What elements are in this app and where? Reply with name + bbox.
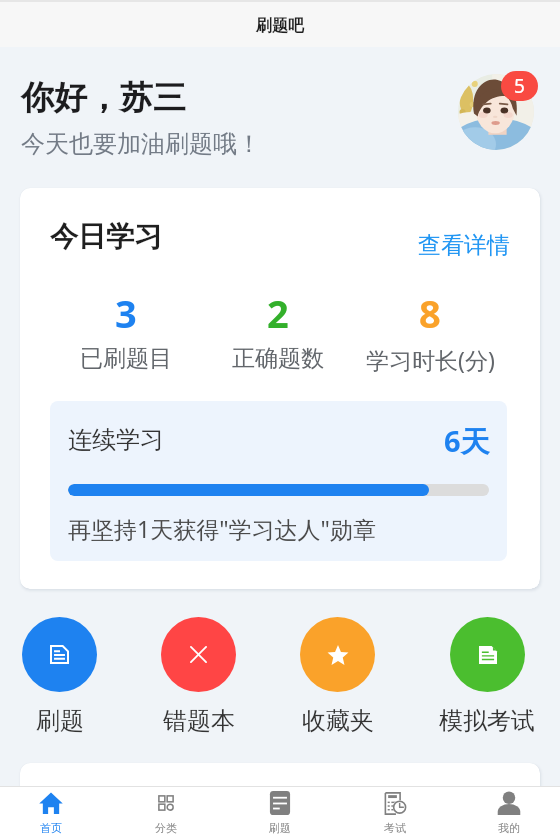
staticText: 2: [267, 287, 289, 339]
button[interactable]: 首页: [27, 787, 75, 836]
button[interactable]: 刷题: [256, 787, 304, 836]
staticText: 8: [419, 287, 441, 339]
staticText: 模拟考试: [439, 706, 535, 736]
staticText: 考试: [384, 821, 406, 835]
button[interactable]: 我的: [485, 787, 533, 836]
staticText: 刷题: [269, 821, 291, 835]
staticText: 学习时长(分): [366, 344, 495, 375]
button[interactable]: 考试: [371, 787, 419, 836]
button[interactable]: 模拟考试: [439, 617, 535, 736]
staticText: 正确题数: [232, 344, 324, 373]
staticText: 再坚持1天获得"学习达人"勋章: [68, 513, 376, 544]
button[interactable]: 刷题: [22, 617, 97, 736]
staticText: 错题本: [163, 706, 235, 736]
staticText: 5: [514, 73, 525, 99]
staticText: 今天也要加油刷题哦！: [21, 129, 261, 159]
staticText: 我的: [498, 821, 520, 835]
staticText: 查看详情: [418, 231, 510, 260]
button[interactable]: Profile avatar: [458, 74, 534, 150]
staticText: 今日学习: [50, 219, 162, 254]
staticText: 6天: [444, 421, 490, 461]
button[interactable]: 错题本: [161, 617, 236, 736]
button[interactable]: 查看详情: [418, 231, 510, 260]
staticText: 刷题: [36, 706, 84, 736]
button[interactable]: 分类: [142, 787, 190, 836]
staticText: 收藏夹: [302, 706, 374, 736]
staticText: 分类: [155, 821, 177, 835]
staticText: 连续学习: [68, 425, 164, 455]
staticText: 首页: [40, 821, 62, 835]
staticText: 3: [115, 287, 137, 339]
staticText: 刷题吧: [256, 16, 304, 36]
button[interactable]: 收藏夹: [300, 617, 375, 736]
staticText: 你好，苏三: [21, 77, 186, 119]
staticText: 已刷题目: [80, 344, 172, 373]
